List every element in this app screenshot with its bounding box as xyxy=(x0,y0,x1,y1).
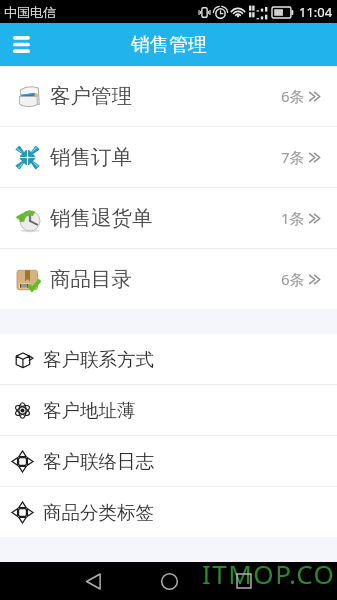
button[interactable]: 客户管理 xyxy=(0,66,337,126)
staticText: 销售退货单 xyxy=(50,205,153,231)
button[interactable]: 客户联络日志 xyxy=(0,436,337,486)
button[interactable]: 商品分类标签 xyxy=(0,487,337,537)
staticText: 1条 xyxy=(281,208,305,228)
staticText: 客户管理 xyxy=(50,83,132,109)
button[interactable]: 商品目录 xyxy=(0,249,337,309)
staticText: 销售订单 xyxy=(50,144,132,170)
button[interactable]: Open navigation menu xyxy=(0,23,43,66)
staticText: 中国电信 xyxy=(4,4,56,20)
staticText: ITMOP.COM xyxy=(202,556,337,594)
staticText: 客户地址薄 xyxy=(43,399,136,422)
staticText: 销售管理 xyxy=(131,33,207,57)
staticText: 客户联系方式 xyxy=(43,348,154,371)
staticText: 6条 xyxy=(281,86,305,106)
button[interactable]: Back xyxy=(71,562,115,600)
button[interactable]: 销售退货单 xyxy=(0,188,337,248)
button[interactable]: 销售订单 xyxy=(0,127,337,187)
staticText: 商品分类标签 xyxy=(43,501,154,524)
staticText: 商品目录 xyxy=(50,266,132,292)
button[interactable]: 客户联系方式 xyxy=(0,334,337,384)
button[interactable]: Home xyxy=(147,562,191,600)
staticText: 7条 xyxy=(281,147,305,167)
staticText: 11:04 xyxy=(299,3,333,21)
button[interactable]: Recent apps xyxy=(222,562,266,600)
button[interactable]: 客户地址薄 xyxy=(0,385,337,435)
staticText: 6条 xyxy=(281,269,305,289)
staticText: 客户联络日志 xyxy=(43,450,154,473)
